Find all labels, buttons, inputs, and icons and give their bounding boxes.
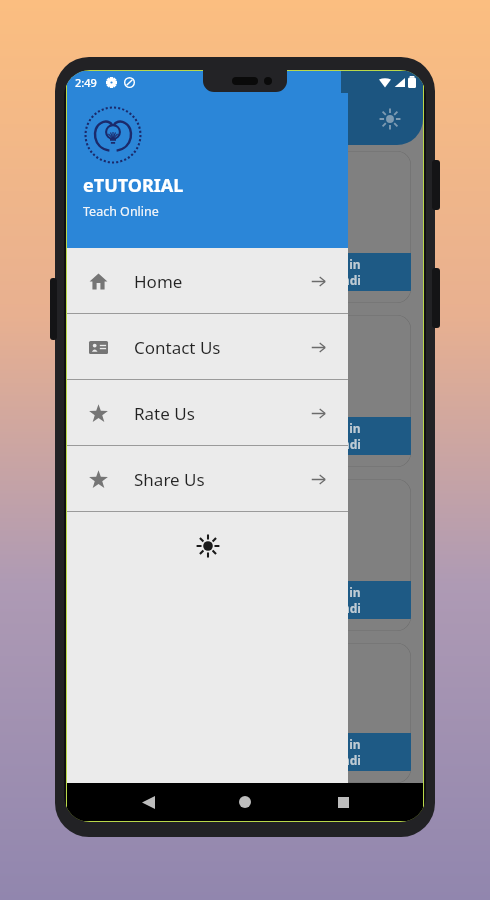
staticText: Teach Online bbox=[83, 203, 159, 220]
staticText: 2:49 bbox=[75, 75, 97, 90]
staticText: GK in Hindi bbox=[329, 420, 361, 452]
button[interactable]: Contact Us bbox=[67, 314, 348, 380]
button[interactable]: GK in Hindi bbox=[79, 479, 411, 631]
staticText: GK in Hindi bbox=[329, 256, 361, 288]
staticText: GK in Hindi bbox=[329, 736, 361, 768]
staticText: Share Us bbox=[134, 468, 205, 491]
button[interactable]: Brightness toggle bbox=[196, 534, 220, 558]
button[interactable]: Back bbox=[131, 785, 165, 819]
button[interactable]: GK in Hindi bbox=[79, 643, 411, 783]
button[interactable]: Brightness bbox=[379, 108, 401, 130]
button[interactable]: Share Us bbox=[67, 446, 348, 512]
button[interactable]: Recents bbox=[326, 785, 360, 819]
staticText: Home bbox=[134, 270, 183, 293]
button[interactable]: Home bbox=[228, 785, 262, 819]
button[interactable]: GK in Hindi bbox=[79, 151, 411, 303]
button[interactable]: Home bbox=[67, 248, 348, 314]
staticText: GK in Hindi bbox=[329, 584, 361, 616]
staticText: Rate Us bbox=[134, 402, 195, 425]
button[interactable]: Rate Us bbox=[67, 380, 348, 446]
staticText: Contact Us bbox=[134, 336, 221, 359]
staticText: eTUTORIAL bbox=[83, 173, 184, 198]
button[interactable]: GK in Hindi bbox=[79, 315, 411, 467]
